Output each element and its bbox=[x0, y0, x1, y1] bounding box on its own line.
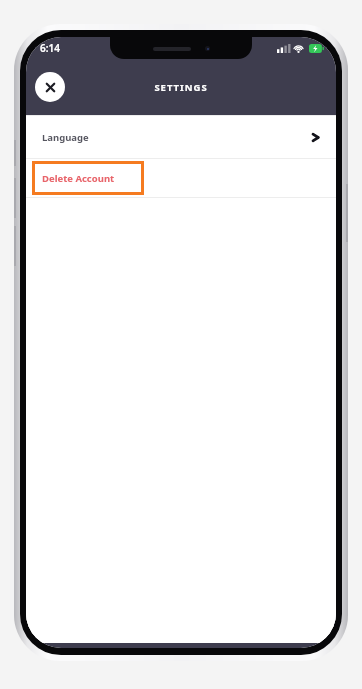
staticText: SETTINGS bbox=[154, 81, 208, 94]
staticText: 6:14 bbox=[40, 41, 60, 55]
button[interactable]: Delete Account bbox=[32, 161, 144, 195]
button[interactable]: Close bbox=[35, 72, 65, 102]
staticText: Delete Account bbox=[42, 172, 115, 185]
button[interactable]: Language bbox=[26, 116, 336, 158]
staticText: Language bbox=[42, 131, 89, 144]
